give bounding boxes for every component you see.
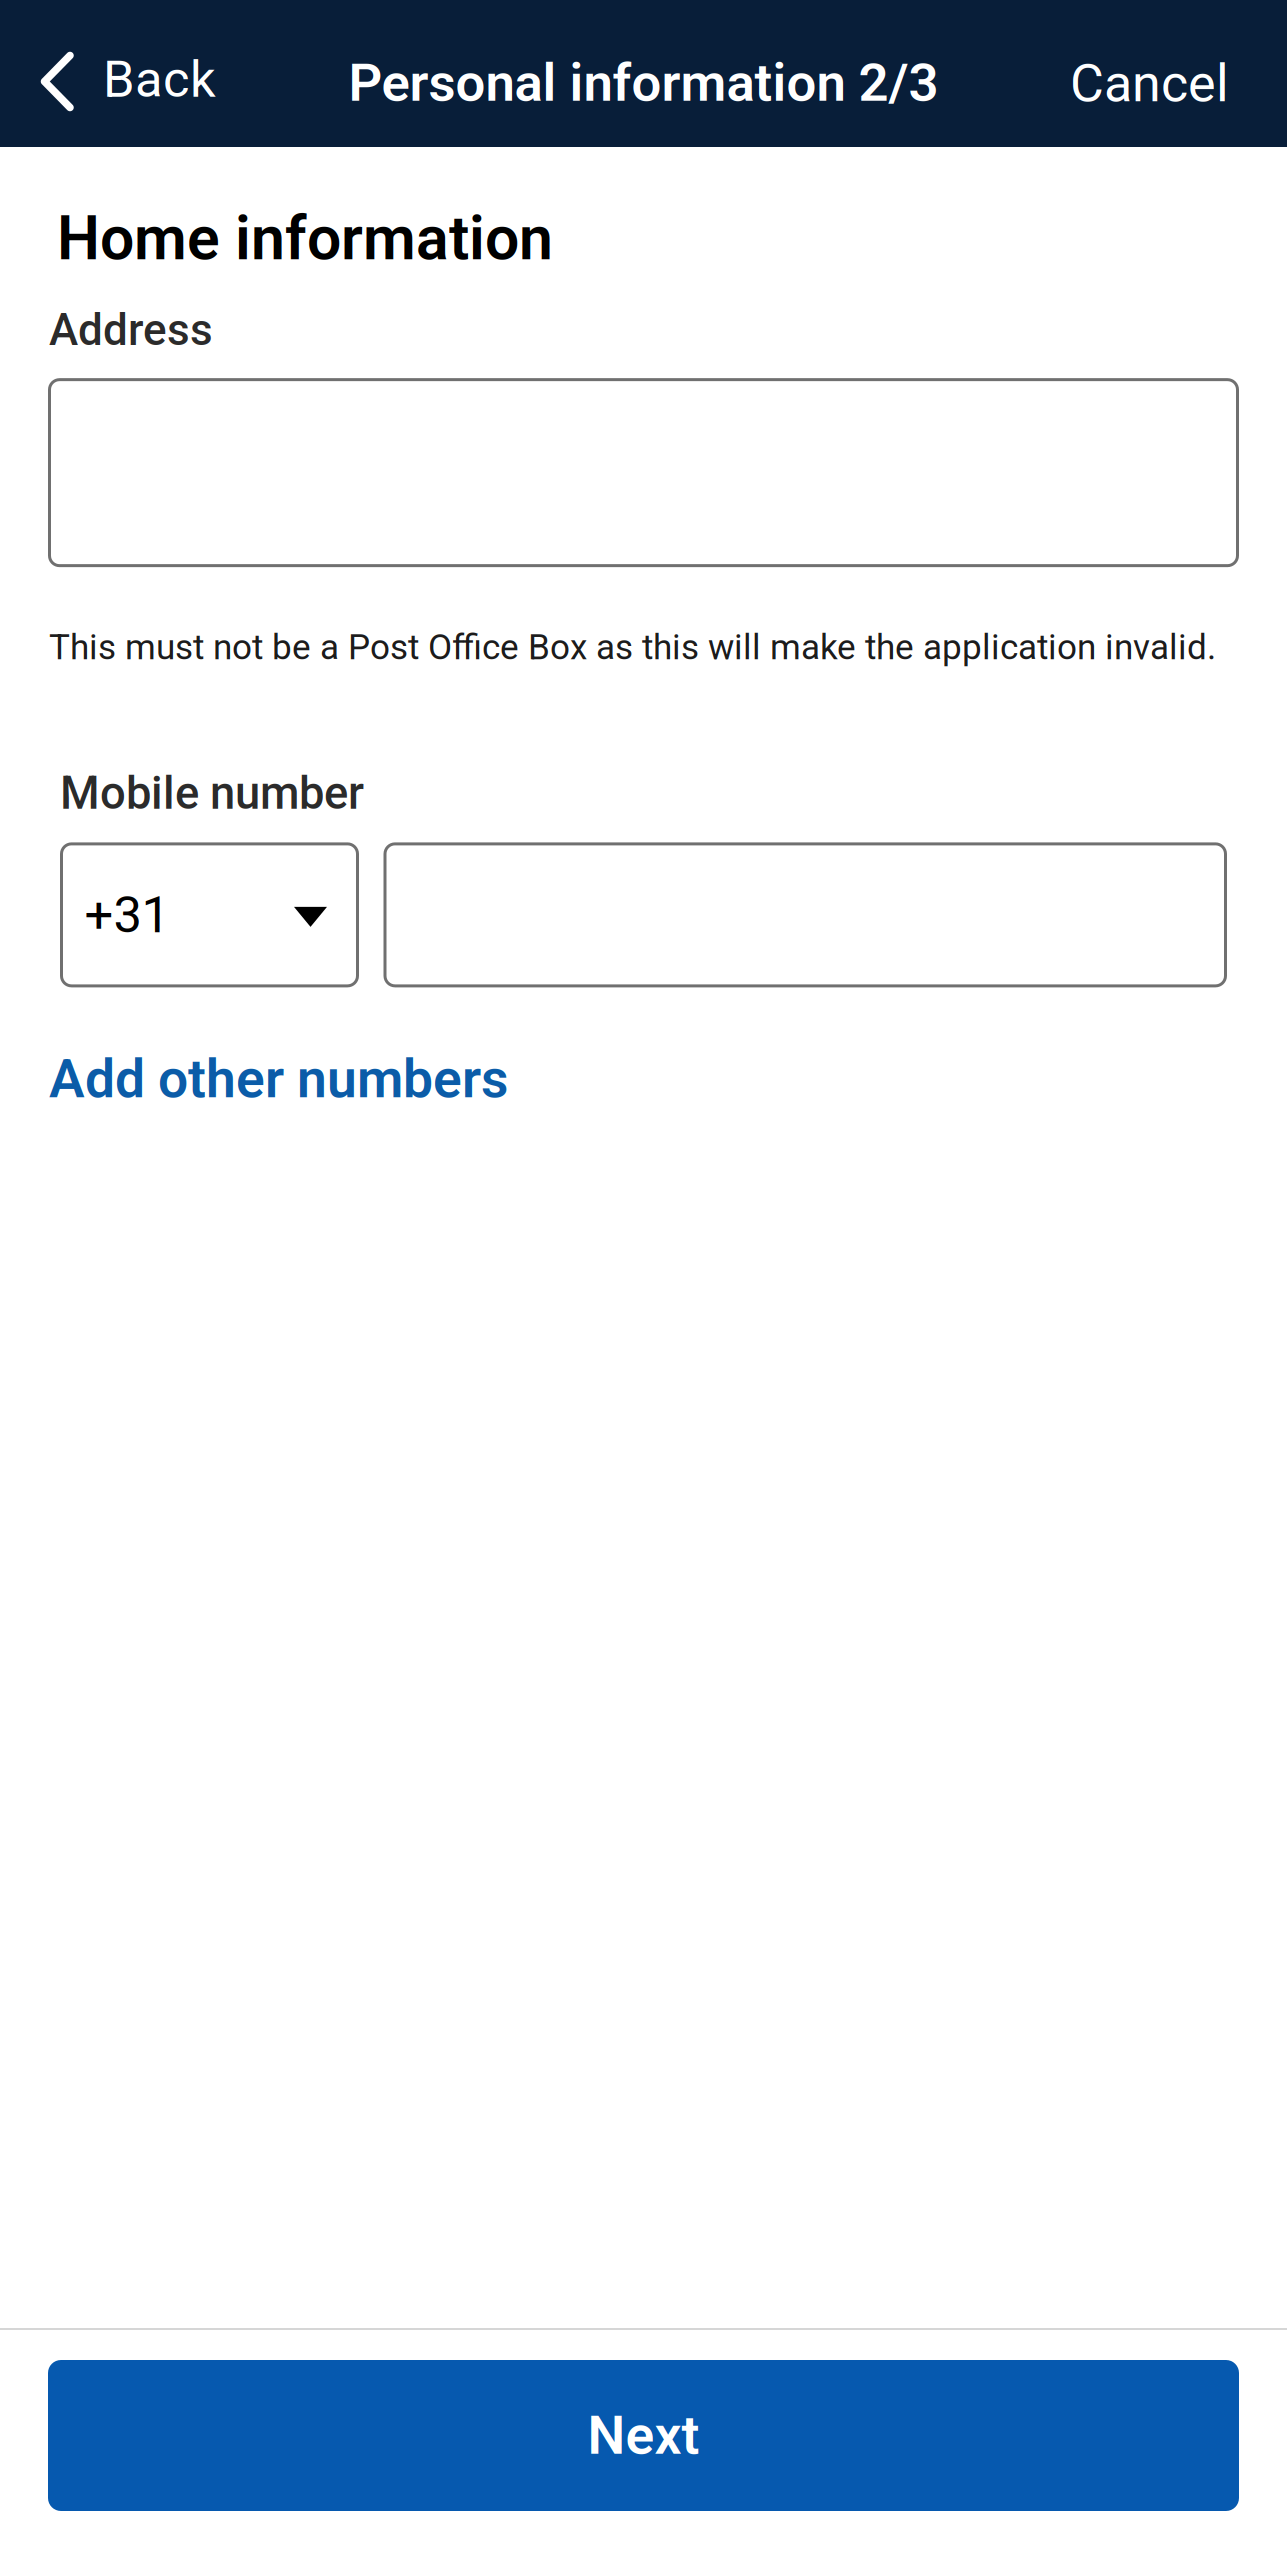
button[interactable]: Next: [48, 2360, 1239, 2511]
button[interactable]: Address: [49, 380, 1237, 566]
button[interactable]: Country calling code, +31: [61, 844, 357, 986]
button[interactable]: Back: [0, 0, 232, 147]
staticText: Next: [587, 2404, 699, 2467]
button[interactable]: Mobile number: [385, 844, 1225, 986]
button[interactable]: Cancel: [1046, 0, 1287, 147]
staticText: This must not be a Post Office Box as th…: [49, 627, 1216, 668]
staticText: Home information: [57, 203, 553, 274]
staticText: Add other numbers: [49, 1048, 508, 1110]
staticText: Cancel: [1070, 53, 1229, 114]
staticText: +31: [84, 885, 169, 945]
staticText: Mobile number: [60, 767, 364, 820]
button[interactable]: Add other numbers: [49, 1048, 508, 1110]
staticText: Personal information 2/3: [348, 52, 938, 114]
staticText: Address: [49, 304, 213, 356]
staticText: Back: [103, 50, 216, 109]
